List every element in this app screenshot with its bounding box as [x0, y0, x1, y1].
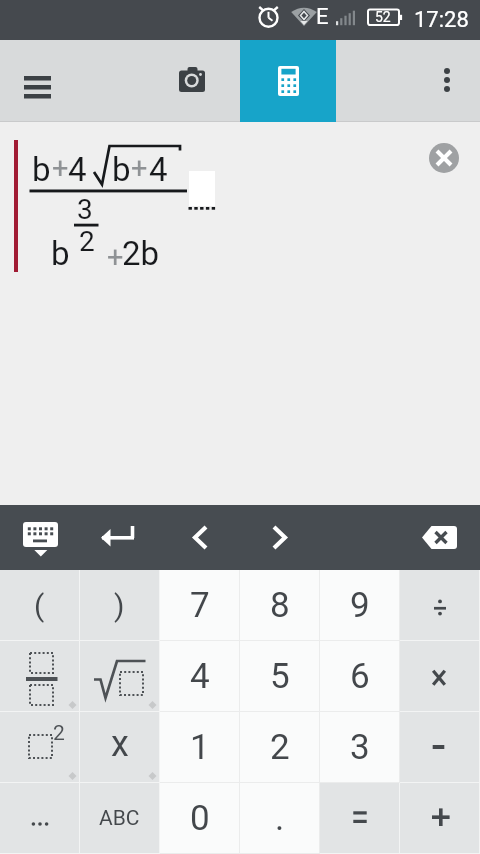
button[interactable]: 3	[320, 712, 400, 783]
staticText: 5	[270, 656, 290, 697]
staticText: +	[131, 151, 148, 185]
staticText: 17:28	[414, 7, 469, 33]
button[interactable]	[0, 641, 80, 712]
button[interactable]	[320, 783, 400, 854]
button[interactable]: ABC	[80, 783, 160, 854]
staticText: 2	[79, 225, 95, 258]
staticText: 8	[270, 585, 290, 626]
button[interactable]	[427, 56, 467, 106]
button[interactable]	[240, 40, 336, 122]
button[interactable]	[429, 143, 459, 173]
staticText: (	[34, 588, 45, 623]
staticText: 9	[350, 585, 370, 626]
button[interactable]	[384, 505, 480, 570]
staticText: 4	[149, 150, 168, 189]
button[interactable]: 8	[240, 570, 320, 641]
button[interactable]: 5	[240, 641, 320, 712]
staticText: x	[111, 723, 129, 765]
staticText: 6	[350, 656, 370, 697]
staticText: b	[112, 150, 131, 189]
staticText: 2b	[122, 234, 160, 273]
staticText: +	[52, 151, 69, 185]
staticText: )	[114, 588, 125, 623]
staticText: 1	[190, 727, 210, 768]
staticText: 3	[77, 193, 93, 226]
button[interactable]: .	[240, 783, 320, 854]
button[interactable]	[192, 505, 288, 570]
button[interactable]: 7	[160, 570, 240, 641]
staticText: E	[316, 4, 329, 30]
button[interactable]	[0, 505, 96, 570]
button[interactable]	[400, 641, 480, 712]
button[interactable]: 4	[160, 641, 240, 712]
staticText: 4	[190, 656, 210, 697]
button[interactable]	[400, 570, 480, 641]
staticText: 52	[375, 9, 391, 25]
staticText: .	[275, 798, 285, 839]
button[interactable]: 0	[160, 783, 240, 854]
staticText: +	[107, 240, 124, 274]
button[interactable]: 9	[320, 570, 400, 641]
button[interactable]	[400, 712, 480, 783]
button[interactable]: )	[80, 570, 160, 641]
staticText: 3	[350, 727, 370, 768]
staticText: 0	[190, 798, 210, 839]
button[interactable]	[96, 505, 192, 570]
staticText: ABC	[99, 806, 140, 831]
button[interactable]: x	[80, 712, 160, 783]
button[interactable]	[10, 61, 66, 105]
staticText: 2	[53, 721, 65, 746]
button[interactable]: 6	[320, 641, 400, 712]
staticText: 7	[190, 585, 210, 626]
button[interactable]	[0, 783, 80, 854]
staticText: b	[51, 234, 70, 273]
button[interactable]: 2	[0, 712, 80, 783]
button[interactable]	[80, 641, 160, 712]
button[interactable]: 1	[160, 712, 240, 783]
button[interactable]: (	[0, 570, 80, 641]
button[interactable]: 2	[240, 712, 320, 783]
staticText: b	[32, 150, 51, 189]
button[interactable]	[400, 783, 480, 854]
staticText: 4	[68, 150, 87, 189]
button[interactable]	[166, 54, 218, 106]
staticText: 2	[270, 727, 290, 768]
